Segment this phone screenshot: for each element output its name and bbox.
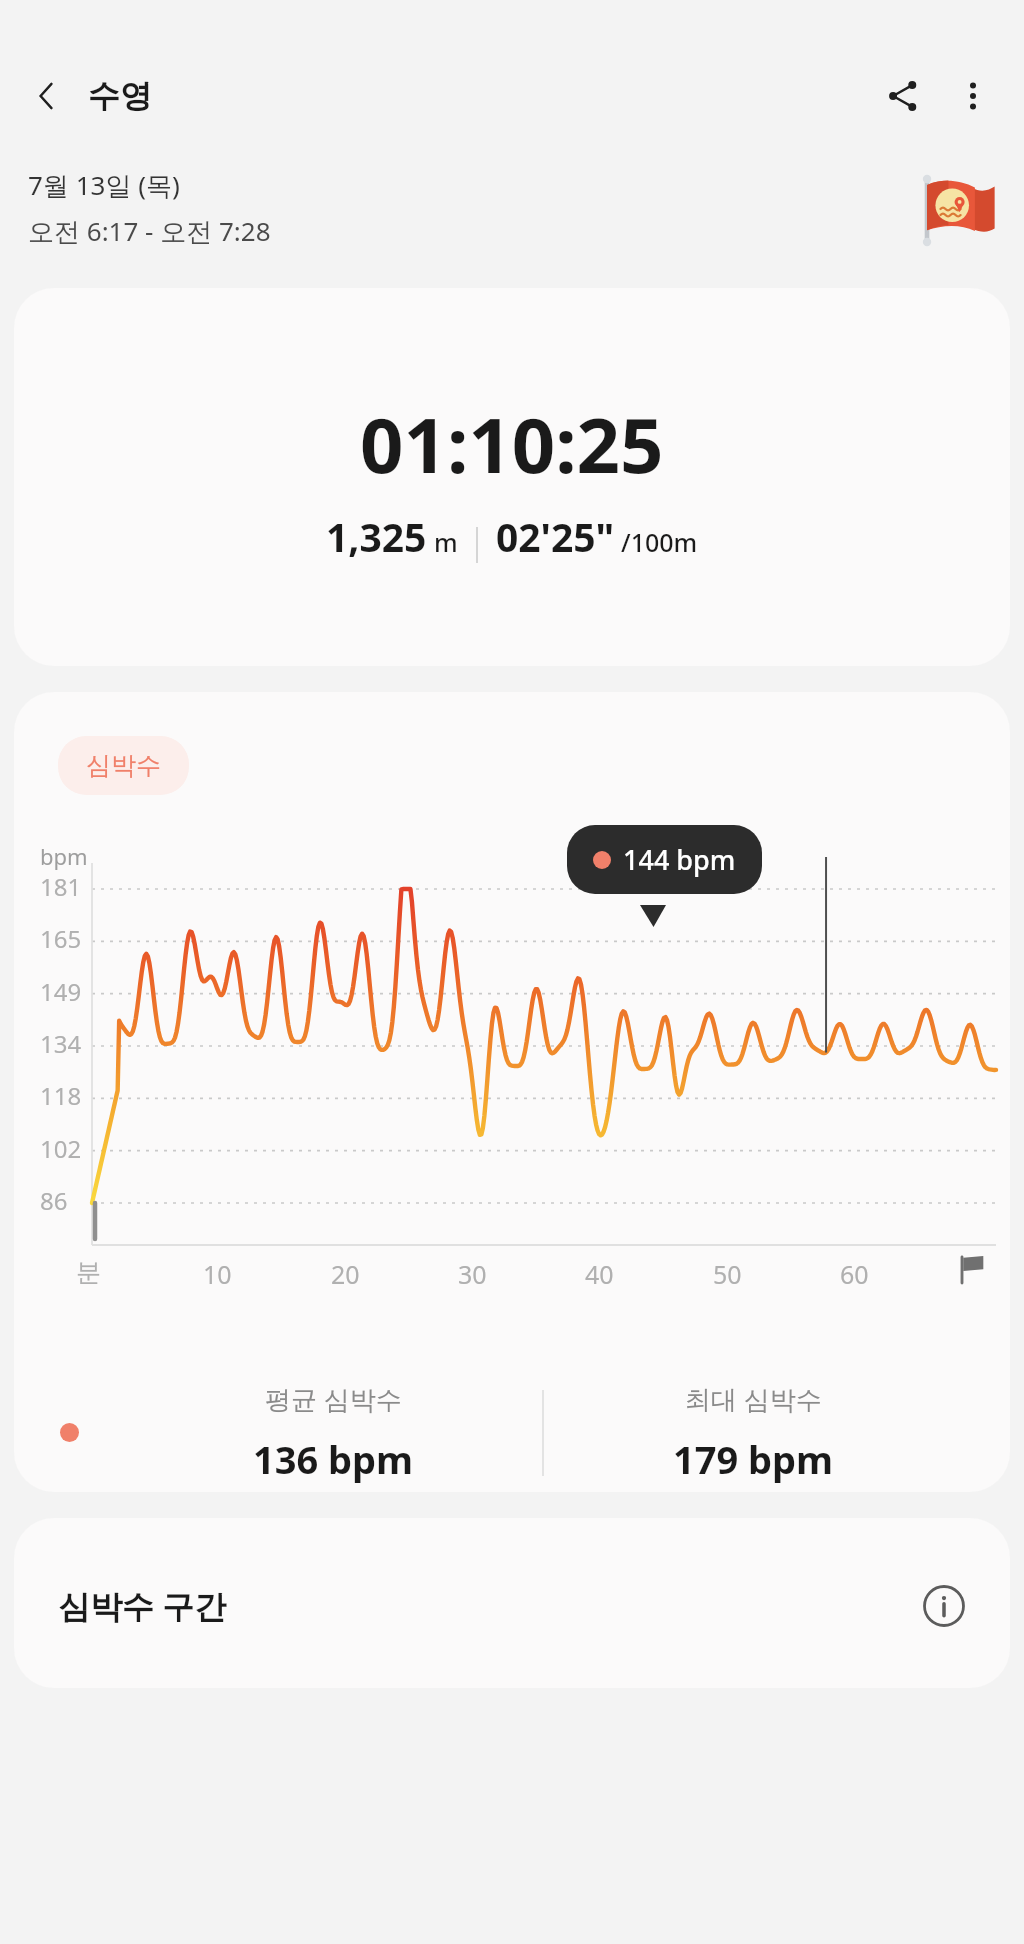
staticText: 7월 13일 (목) (28, 167, 180, 203)
button[interactable]: Back (18, 67, 76, 125)
button[interactable]: 01:10:25 (14, 288, 1010, 666)
staticText: 10 (203, 1257, 232, 1291)
staticText: 심박수 구간 (58, 1584, 227, 1628)
staticText: 30 (458, 1257, 487, 1291)
staticText: 134 (40, 1027, 82, 1060)
staticText: 50 (713, 1257, 742, 1291)
staticText: 오전 6:17 - 오전 7:28 (28, 213, 271, 249)
staticText: bpm (40, 841, 88, 871)
button[interactable]: Share (868, 61, 938, 131)
staticText: 심박수 (86, 750, 161, 781)
staticText: /100m (621, 525, 698, 559)
staticText: m (434, 525, 458, 559)
staticText: 181 (40, 870, 82, 903)
staticText: 136 bpm (253, 1433, 414, 1485)
staticText: 1,325 (326, 510, 427, 563)
staticText: 40 (585, 1257, 614, 1291)
button[interactable]: Workout type badge (910, 162, 1002, 254)
staticText: 수영 (88, 76, 152, 116)
staticText: 165 (40, 922, 82, 955)
staticText: 102 (40, 1132, 82, 1165)
staticText: 분 (76, 1257, 101, 1288)
button[interactable]: 심박수 (14, 692, 1010, 1492)
staticText: 20 (331, 1257, 360, 1291)
staticText: 179 bpm (673, 1433, 834, 1485)
button[interactable]: 144 bpm (567, 825, 762, 894)
staticText: 최대 심박수 (685, 1381, 822, 1417)
staticText: 86 (40, 1184, 68, 1217)
staticText: 01:10:25 (360, 392, 664, 496)
staticText: 02'25" (496, 510, 615, 563)
staticText: 60 (840, 1257, 869, 1291)
staticText: 118 (40, 1079, 82, 1112)
staticText: 144 bpm (623, 841, 736, 878)
button[interactable]: More options (938, 61, 1008, 131)
button[interactable]: Info (918, 1580, 970, 1632)
button[interactable]: 심박수 구간 (14, 1518, 1010, 1688)
button[interactable]: 심박수 (58, 736, 189, 795)
staticText: 149 (40, 975, 82, 1008)
staticText: 평균 심박수 (265, 1381, 402, 1417)
